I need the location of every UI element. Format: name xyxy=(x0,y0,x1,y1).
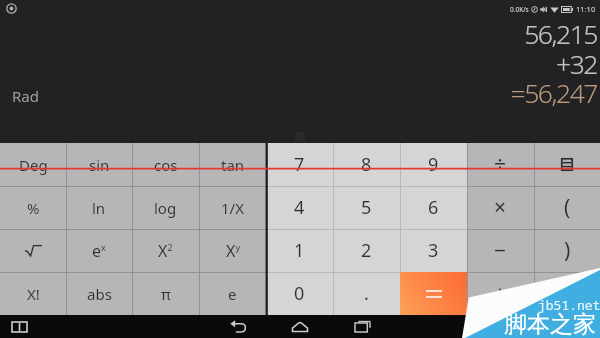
button[interactable]: 5 xyxy=(333,186,400,229)
button[interactable]: abs xyxy=(66,272,132,315)
button[interactable]: π xyxy=(132,272,199,315)
button[interactable]: Recents xyxy=(349,315,375,338)
staticText: 0 xyxy=(294,281,305,306)
staticText: X2 xyxy=(158,240,173,262)
button[interactable] xyxy=(534,143,600,186)
button[interactable] xyxy=(400,272,467,315)
button[interactable]: X! xyxy=(0,272,66,315)
staticText: + xyxy=(494,279,507,308)
button[interactable]: ex xyxy=(66,229,132,272)
staticText: cos xyxy=(154,155,178,175)
button[interactable] xyxy=(0,229,66,272)
staticText: . xyxy=(364,281,369,306)
staticText: − xyxy=(494,236,507,265)
staticText: ) xyxy=(564,236,571,265)
staticText: ex xyxy=(92,240,106,262)
staticText: 8 xyxy=(361,152,372,177)
button[interactable]: 9 xyxy=(400,143,467,186)
button[interactable]: ln xyxy=(66,186,132,229)
staticText: e xyxy=(228,284,237,304)
button[interactable]: 0 xyxy=(266,272,333,315)
button[interactable]: ÷ xyxy=(467,143,534,186)
staticText: 7 xyxy=(294,152,305,177)
button[interactable]: 1/X xyxy=(199,186,266,229)
button[interactable]: ( xyxy=(534,186,600,229)
staticText: 5 xyxy=(361,195,372,220)
staticText: 9 xyxy=(428,152,439,177)
staticText: jb51.net xyxy=(538,296,600,314)
staticText: log xyxy=(154,198,177,218)
button[interactable]: X2 xyxy=(132,229,199,272)
staticText: 56,215 +32 =56,247 xyxy=(510,16,597,111)
staticText: Rad xyxy=(12,86,39,106)
staticText: 脚本之家 xyxy=(504,310,596,338)
button[interactable]: . xyxy=(333,272,400,315)
button[interactable]: 4 xyxy=(266,186,333,229)
button[interactable]: + xyxy=(467,272,534,315)
staticText: ÷ xyxy=(494,150,507,179)
staticText: sin xyxy=(89,155,110,175)
button[interactable]: cos xyxy=(132,143,199,186)
button[interactable]: Home xyxy=(287,315,313,338)
button[interactable]: 3 xyxy=(400,229,467,272)
button[interactable] xyxy=(534,272,600,315)
button[interactable]: Split screen xyxy=(8,316,30,338)
button[interactable]: Back xyxy=(225,315,251,338)
button[interactable]: 7 xyxy=(266,143,333,186)
staticText: X! xyxy=(27,284,40,304)
staticText: ln xyxy=(92,198,106,218)
button[interactable]: ) xyxy=(534,229,600,272)
button[interactable]: 2 xyxy=(333,229,400,272)
button[interactable]: % xyxy=(0,186,66,229)
staticText: π xyxy=(161,284,171,304)
staticText: 1 xyxy=(294,238,305,263)
staticText: 4 xyxy=(294,195,305,220)
button[interactable]: tan xyxy=(199,143,266,186)
staticText: tan xyxy=(221,155,245,175)
staticText: 1/X xyxy=(221,198,244,218)
staticText: 0.0K/s xyxy=(510,5,529,14)
button[interactable]: Xy xyxy=(199,229,266,272)
button[interactable]: Deg xyxy=(0,143,66,186)
button[interactable]: e xyxy=(199,272,266,315)
staticText: ( xyxy=(564,193,571,222)
button[interactable]: log xyxy=(132,186,199,229)
staticText: 11:10 xyxy=(576,4,596,14)
button[interactable]: × xyxy=(467,186,534,229)
button[interactable]: 8 xyxy=(333,143,400,186)
staticText: 6 xyxy=(428,195,439,220)
staticText: abs xyxy=(87,284,112,304)
staticText: 2 xyxy=(361,238,372,263)
button[interactable]: 1 xyxy=(266,229,333,272)
staticText: 3 xyxy=(428,238,439,263)
staticText: × xyxy=(494,193,507,222)
button[interactable]: sin xyxy=(66,143,132,186)
staticText: % xyxy=(27,198,40,218)
staticText: Deg xyxy=(19,155,48,175)
button[interactable]: 6 xyxy=(400,186,467,229)
button[interactable]: − xyxy=(467,229,534,272)
staticText: Xy xyxy=(226,240,240,262)
